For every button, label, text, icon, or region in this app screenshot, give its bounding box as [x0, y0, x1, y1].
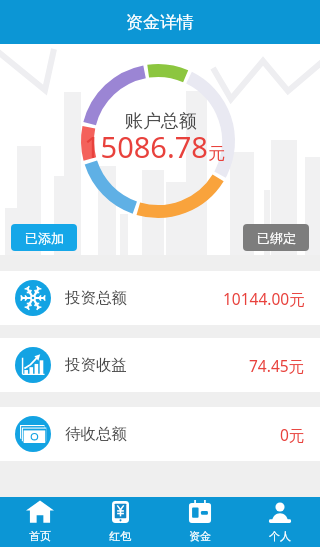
- staticText: 待收总额: [65, 424, 127, 444]
- staticText: 投资收益: [65, 355, 127, 375]
- staticText: 红包: [109, 529, 131, 543]
- button[interactable]: 个人: [240, 497, 320, 547]
- staticText: 首页: [29, 529, 51, 543]
- staticText: 个人: [269, 529, 291, 543]
- button[interactable]: 投资收益: [0, 338, 320, 392]
- staticText: 15086.78: [84, 127, 208, 166]
- staticText: 资金: [189, 529, 211, 543]
- button[interactable]: 首页: [0, 497, 80, 547]
- button[interactable]: 投资总额: [0, 271, 320, 325]
- button[interactable]: 红包: [80, 497, 160, 547]
- staticText: 已绑定: [257, 230, 296, 246]
- staticText: 0元: [280, 424, 305, 445]
- staticText: 元: [208, 143, 225, 164]
- staticText: 投资总额: [65, 288, 127, 308]
- staticText: 74.45元: [249, 355, 305, 376]
- button[interactable]: 已添加: [11, 224, 77, 251]
- staticText: 账户总额: [125, 110, 197, 133]
- button[interactable]: 待收总额: [0, 407, 320, 461]
- button[interactable]: 资金: [160, 497, 240, 547]
- button[interactable]: 已绑定: [243, 224, 309, 251]
- staticText: 资金详情: [126, 12, 194, 33]
- staticText: 10144.00元: [223, 288, 305, 309]
- staticText: 已添加: [25, 230, 64, 246]
